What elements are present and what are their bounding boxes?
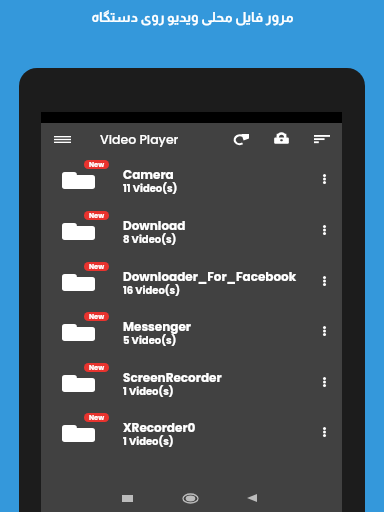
button[interactable]: More options — [310, 216, 338, 244]
staticText: New — [89, 160, 105, 169]
staticText: 1 Video(s) — [123, 384, 174, 398]
button[interactable]: New — [41, 155, 342, 205]
staticText: New — [89, 312, 105, 321]
button[interactable]: More options — [310, 165, 338, 193]
staticText: 16 Video(s) — [123, 283, 180, 297]
button[interactable]: New — [41, 206, 342, 256]
staticText: مرور فایل محلی ویدیو روی دستگاه — [91, 10, 294, 25]
button[interactable]: New — [41, 257, 342, 307]
button[interactable]: Lock — [265, 123, 297, 155]
staticText: Video Player — [100, 131, 179, 148]
staticText: 8 Video(s) — [123, 232, 177, 246]
button[interactable]: More options — [310, 418, 338, 446]
button[interactable]: Refresh — [225, 123, 257, 155]
staticText: 11 Video(s) — [123, 181, 178, 195]
button[interactable]: New — [41, 408, 342, 458]
button[interactable]: New — [41, 358, 342, 408]
staticText: New — [89, 363, 105, 372]
button[interactable]: Back — [240, 486, 264, 510]
button[interactable]: More options — [310, 368, 338, 396]
button[interactable]: More options — [310, 317, 338, 345]
staticText: XRecorder0 — [123, 419, 196, 436]
staticText: 5 Video(s) — [123, 333, 177, 347]
button[interactable]: New — [41, 307, 342, 357]
button[interactable]: Sort — [306, 123, 338, 155]
button[interactable]: Menu — [46, 123, 78, 155]
staticText: New — [89, 413, 105, 422]
staticText: New — [89, 262, 105, 271]
staticText: Download — [123, 217, 186, 234]
staticText: Messenger — [123, 318, 191, 335]
staticText: Camera — [123, 166, 174, 183]
button[interactable]: Recents — [115, 486, 139, 510]
button[interactable]: More options — [310, 267, 338, 295]
staticText: Downloader_For_Facebook — [123, 268, 297, 285]
staticText: 1 Video(s) — [123, 434, 174, 448]
staticText: ScreenRecorder — [123, 369, 222, 386]
button[interactable]: Home — [178, 486, 202, 510]
staticText: New — [89, 211, 105, 220]
